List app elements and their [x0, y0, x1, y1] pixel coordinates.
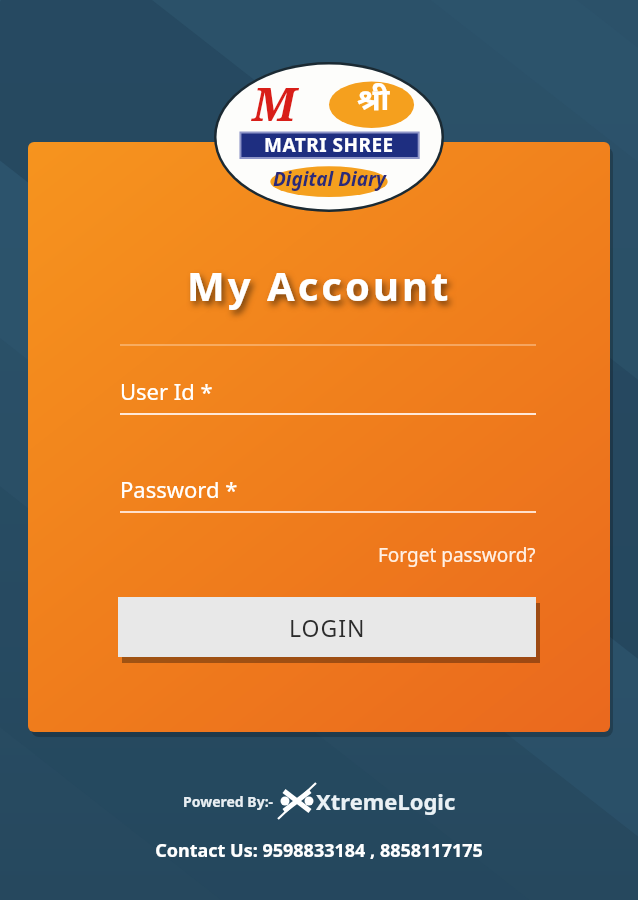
- staticText: My Account: [187, 258, 452, 312]
- staticText: Password *: [120, 474, 238, 504]
- staticText: श्री: [357, 78, 390, 119]
- staticText: MATRI SHREE: [264, 132, 394, 158]
- button[interactable]: Password *: [120, 468, 536, 514]
- staticText: User Id *: [120, 376, 213, 406]
- staticText: M: [252, 72, 296, 135]
- staticText: Digital Diary: [273, 166, 386, 192]
- button[interactable]: LOGIN: [118, 597, 536, 657]
- staticText: LOGIN: [289, 612, 366, 643]
- button[interactable]: Forget password?: [340, 538, 536, 572]
- staticText: Powered By:-: [183, 792, 274, 811]
- staticText: Forget password?: [378, 542, 536, 568]
- button[interactable]: User Id *: [120, 370, 536, 416]
- staticText: XtremeLogic: [316, 786, 456, 816]
- staticText: Contact Us: 9598833184 , 8858117175: [155, 838, 483, 863]
- other: Matri Shree Digital Diary logo: [214, 62, 444, 212]
